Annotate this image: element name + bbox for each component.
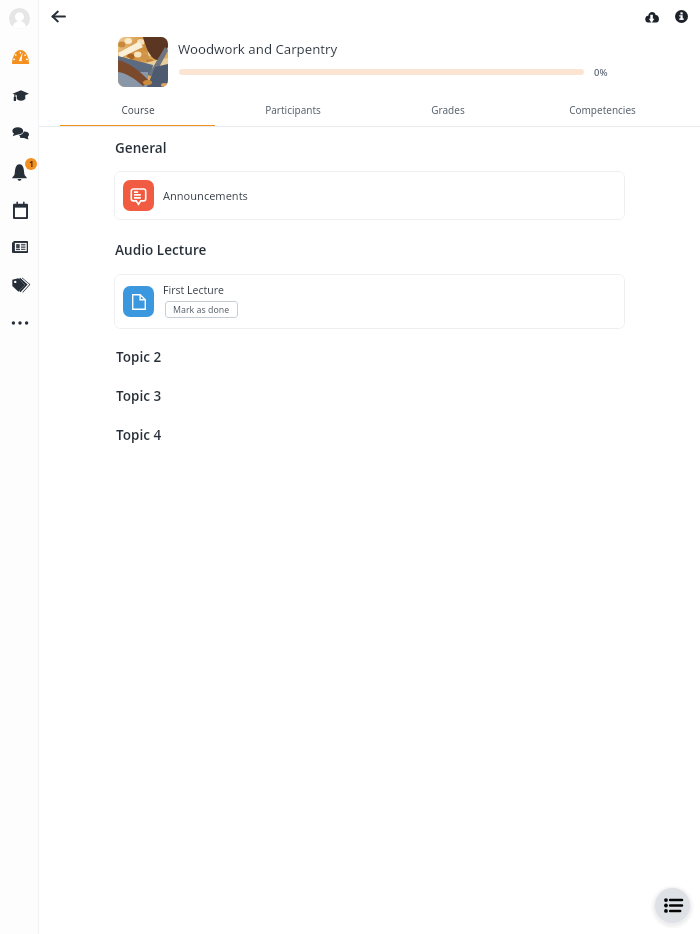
button[interactable]: Mark as done xyxy=(165,301,238,318)
staticText: First Lecture xyxy=(163,283,224,297)
staticText: Competencies xyxy=(569,103,636,117)
button[interactable]: Course index xyxy=(655,888,690,923)
button[interactable]: User account xyxy=(9,8,30,29)
button[interactable]: Course xyxy=(60,96,215,127)
button[interactable]: Notifications xyxy=(7,157,33,183)
staticText: Topic 2 xyxy=(116,348,162,366)
button[interactable]: Messages xyxy=(7,120,33,146)
button[interactable]: Announcements xyxy=(114,171,625,220)
button[interactable]: My courses xyxy=(7,82,33,108)
button[interactable]: Download course xyxy=(638,3,665,30)
button[interactable]: Grades xyxy=(370,96,525,127)
staticText: Audio Lecture xyxy=(115,241,207,259)
staticText: 0% xyxy=(594,66,608,79)
button[interactable]: Tags xyxy=(7,272,33,298)
button[interactable]: Course summary xyxy=(668,3,695,30)
staticText: Woodwork and Carpentry xyxy=(178,40,338,58)
button[interactable]: More xyxy=(7,310,33,336)
button[interactable]: Competencies xyxy=(525,96,680,127)
staticText: Grades xyxy=(431,103,465,117)
staticText: Announcements xyxy=(163,188,248,203)
staticText: Participants xyxy=(265,103,321,117)
staticText: Topic 3 xyxy=(116,387,162,405)
button[interactable]: Back xyxy=(44,2,72,30)
button[interactable]: Participants xyxy=(215,96,370,127)
staticText: Topic 4 xyxy=(116,426,162,444)
button[interactable]: First Lecture xyxy=(114,274,625,329)
staticText: General xyxy=(115,139,167,157)
button[interactable]: Contacts xyxy=(7,234,33,260)
button[interactable]: Calendar xyxy=(7,197,33,223)
staticText: Course xyxy=(121,103,155,117)
staticText: 1 xyxy=(29,158,34,170)
staticText: Mark as done xyxy=(173,304,230,316)
button[interactable]: Dashboard xyxy=(7,44,33,70)
